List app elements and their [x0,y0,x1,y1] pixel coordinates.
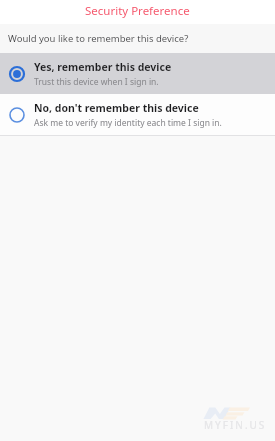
staticText: No, don't remember this device [34,101,199,115]
staticText: Security Preference [85,3,190,19]
staticText: Yes, remember this device [34,60,172,74]
other: Selected option [9,66,25,82]
button[interactable]: Selected option [0,53,275,94]
button[interactable]: Unselected option [0,94,275,135]
staticText: Would you like to remember this device? [8,32,189,45]
staticText: Ask me to verify my identity each time I… [34,117,222,129]
staticText: Trust this device when I sign in. [34,76,159,88]
staticText: MYFIN.US [204,418,267,432]
other: Unselected option [9,107,25,123]
